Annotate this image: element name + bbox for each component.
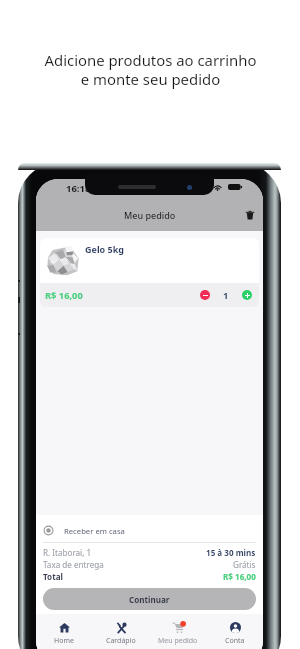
button[interactable]: Home <box>36 614 92 649</box>
staticText: R$ 16,00 <box>223 571 256 582</box>
staticText: Grátis <box>233 559 256 570</box>
staticText: Adicione produtos ao carrinho e monte se… <box>44 50 257 90</box>
staticText: Gelo 5kg <box>85 243 124 255</box>
staticText: R$ 16,00 <box>45 289 83 302</box>
button[interactable]: Gelo 5kg <box>40 238 259 283</box>
staticText: 15 à 30 mins <box>206 547 256 558</box>
staticText: Taxa de entrega <box>43 559 104 570</box>
staticText: Receber em casa <box>64 526 125 536</box>
staticText: Cardápio <box>106 636 136 646</box>
staticText: R. Itaborai, 1 <box>43 547 92 558</box>
button[interactable]: Remover item <box>200 290 210 300</box>
staticText: 16:18 <box>66 182 91 195</box>
button[interactable]: Excluir pedido <box>241 206 259 224</box>
button[interactable]: Receber em casa <box>43 524 125 537</box>
staticText: Total <box>43 571 63 582</box>
staticText: Meu pedido <box>158 636 198 646</box>
staticText: Conta <box>225 636 245 646</box>
button[interactable]: Cardápio <box>92 614 149 649</box>
staticText: 1 <box>223 289 229 302</box>
button[interactable]: Continuar <box>43 588 256 610</box>
button[interactable]: Meu pedido <box>149 614 206 649</box>
button[interactable]: Conta <box>206 614 263 649</box>
button[interactable]: Adicionar item <box>242 290 252 300</box>
staticText: Home <box>54 636 74 646</box>
staticText: Meu pedido <box>124 209 176 221</box>
staticText: Continuar <box>129 594 170 605</box>
